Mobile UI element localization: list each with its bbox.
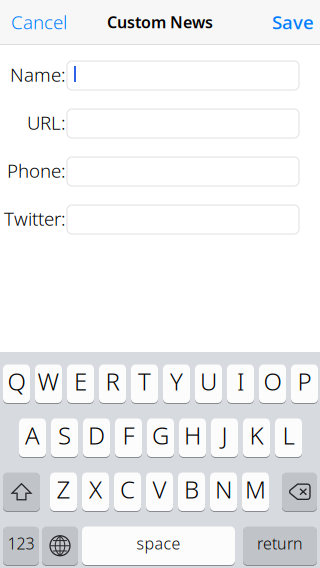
staticText: Save [272,10,314,34]
button[interactable]: X [82,472,109,511]
button[interactable]: S [51,418,78,457]
button[interactable]: M [242,472,269,511]
button[interactable]: H [179,418,206,457]
button[interactable]: U [195,364,222,403]
button[interactable]: Z [50,472,77,511]
button[interactable]: W [35,364,62,403]
staticText: X [89,473,102,505]
button[interactable]: space [82,526,235,565]
button[interactable]: Delete [282,472,317,511]
staticText: M [245,473,266,505]
button[interactable]: N [210,472,237,511]
staticText: space [136,533,180,554]
button[interactable]: Y [163,364,190,403]
button[interactable]: J [211,418,238,457]
button[interactable]: return [243,526,317,565]
staticText: I [237,365,244,397]
button[interactable]: Save [258,0,314,44]
button[interactable]: A [19,418,46,457]
staticText: L [282,419,294,451]
staticText: O [263,365,281,397]
button[interactable]: C [114,472,141,511]
button[interactable]: L [275,418,302,457]
staticText: Phone: [7,158,66,183]
button[interactable]: I [227,364,254,403]
button[interactable]: 123 [3,526,39,565]
staticText: J [221,419,227,451]
staticText: Cancel [11,10,67,34]
button[interactable]: K [243,418,270,457]
staticText: A [25,419,40,451]
staticText: K [249,419,263,451]
staticText: N [215,473,232,505]
staticText: S [58,419,71,451]
staticText: 123 [7,533,34,554]
button[interactable]: D [83,418,110,457]
staticText: C [120,473,135,505]
button[interactable]: B [178,472,205,511]
staticText: V [152,473,166,505]
staticText: URL: [27,110,66,135]
staticText: D [88,419,105,451]
staticText: R [105,365,119,397]
button[interactable]: G [147,418,174,457]
staticText: U [200,365,217,397]
staticText: W [37,365,59,397]
staticText: return [257,533,303,554]
button[interactable]: V [146,472,173,511]
staticText: F [122,419,134,451]
button[interactable]: Shift [3,472,40,511]
staticText: Twitter: [4,206,66,231]
staticText: Z [56,473,70,505]
button[interactable]: F [115,418,142,457]
button[interactable]: O [259,364,286,403]
staticText: P [297,365,311,397]
button[interactable]: E [67,364,94,403]
staticText: Q [7,365,25,397]
staticText: B [184,473,199,505]
staticText: Custom News [107,11,213,33]
staticText: E [74,365,87,397]
staticText: H [184,419,201,451]
button[interactable]: Next keyboard [42,526,78,565]
staticText: G [152,419,169,451]
staticText: Name: [10,62,66,87]
button[interactable]: T [131,364,158,403]
staticText: Y [170,365,183,397]
staticText: T [138,365,151,397]
button[interactable]: Q [3,364,30,403]
button[interactable]: Cancel [11,0,75,44]
button[interactable]: R [99,364,126,403]
button[interactable]: P [291,364,318,403]
